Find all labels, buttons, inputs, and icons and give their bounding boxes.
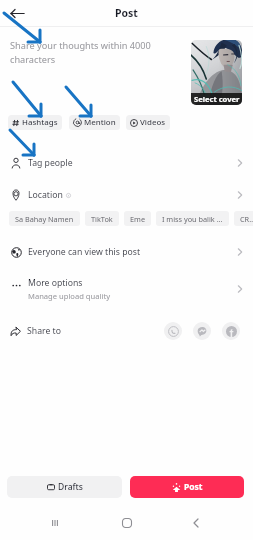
staticText: CRUSH [240,214,253,224]
staticText: Location [28,189,63,201]
staticText: Hashtags [22,117,58,128]
button[interactable]: TikTok [85,211,119,226]
staticText: Share your thoughts within 4000 characte… [10,39,151,66]
button[interactable]: Back [186,513,206,533]
button[interactable]: Location [0,179,253,210]
button[interactable]: Eme [124,211,151,226]
staticText: More options [28,277,83,289]
button[interactable]: Tag people [0,147,253,178]
button[interactable]: Sa Bahay Namen [9,211,80,226]
staticText: Drafts [58,481,83,493]
button[interactable]: Share to [10,325,61,337]
button[interactable]: Home [117,513,137,533]
staticText: Share to [27,325,61,337]
staticText: Select cover [194,94,240,104]
button[interactable]: Messenger [193,322,211,340]
staticText: Mention [84,117,116,128]
button[interactable]: Drafts [7,476,122,498]
button[interactable]: CRUSH [234,211,253,226]
staticText: Videos [140,117,166,128]
button[interactable]: Back [8,4,27,23]
staticText: Eme [130,214,145,224]
staticText: I miss you balik ... [162,214,223,224]
button[interactable]: Videos [126,115,170,130]
button[interactable]: More options [0,273,253,304]
staticText: TikTok [91,214,113,224]
staticText: Sa Bahay Namen [15,214,74,224]
staticText: Post [184,481,203,493]
staticText: Post [115,6,138,20]
button[interactable]: Hashtags [8,115,62,130]
staticText: Manage upload quality [28,291,111,301]
button[interactable]: Post [130,476,244,498]
button[interactable]: Everyone can view this post [0,236,253,267]
button[interactable]: I miss you balik ... [156,211,229,226]
staticText: Everyone can view this post [28,246,141,258]
button[interactable]: Select cover [191,40,242,105]
button[interactable]: WhatsApp [164,322,182,340]
staticText: Tag people [28,157,73,169]
button[interactable]: Recents [45,513,65,533]
button[interactable]: Mention [69,115,120,130]
button[interactable]: Facebook [222,322,240,340]
